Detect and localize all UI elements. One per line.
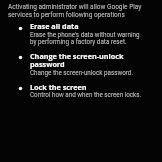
staticText: Control how and when the screen locks. xyxy=(30,91,142,98)
staticText: Activating administrator will allow Goog… xyxy=(8,3,142,11)
staticText: services to perform following operations xyxy=(8,11,125,19)
staticText: Erase the phone's data without warning xyxy=(30,31,140,38)
staticText: Erase all data xyxy=(30,21,79,31)
button[interactable] xyxy=(14,22,154,47)
button[interactable] xyxy=(14,51,154,77)
staticText: Change the screen-unlock xyxy=(30,51,124,61)
staticText: Change the screen-unlock password. xyxy=(30,69,134,76)
staticText: Lock the screen xyxy=(30,82,87,92)
staticText: by performing a factory data reset. xyxy=(30,38,127,45)
staticText: password xyxy=(30,59,65,69)
button[interactable] xyxy=(14,83,154,100)
